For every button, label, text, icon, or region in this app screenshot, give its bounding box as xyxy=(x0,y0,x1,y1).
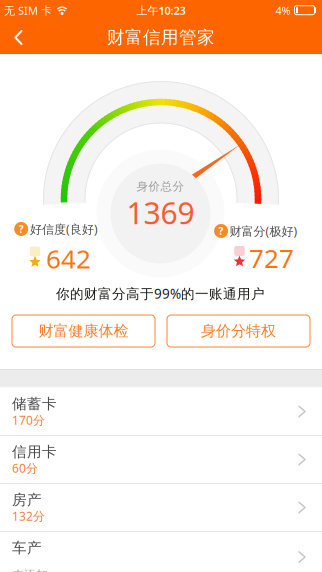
staticText: 财富信用管家 xyxy=(107,26,215,48)
staticText: 身价总分 xyxy=(136,179,184,194)
staticText: 车产 xyxy=(12,539,42,557)
staticText: 你的财富分高于99%的一账通用户 xyxy=(56,284,265,303)
staticText: 上午10:23 xyxy=(136,3,185,18)
button[interactable]: 储蓄卡 xyxy=(0,387,322,435)
staticText: 身价分特权 xyxy=(201,322,276,340)
button[interactable]: 财富健康体检 xyxy=(12,315,155,347)
staticText: 727 xyxy=(249,240,294,276)
button[interactable]: 车产 xyxy=(0,531,322,572)
staticText: 1369 xyxy=(126,192,194,233)
button[interactable]: 信用卡 xyxy=(0,435,322,483)
staticText: 财富健康体检 xyxy=(38,322,128,340)
staticText: 4% xyxy=(275,3,290,18)
staticText: 60分 xyxy=(12,460,38,476)
staticText: 信用卡 xyxy=(12,443,57,461)
staticText: 房产 xyxy=(12,491,42,509)
staticText: ? xyxy=(219,224,224,238)
staticText: 132分 xyxy=(12,508,45,524)
staticText: 无 SIM 卡 xyxy=(4,3,52,18)
button[interactable] xyxy=(8,27,29,48)
button[interactable]: ? xyxy=(214,224,228,238)
staticText: 好信度(良好) xyxy=(30,221,98,237)
staticText: 未添加 xyxy=(12,567,48,572)
staticText: 储蓄卡 xyxy=(12,395,57,413)
button[interactable]: 身价分特权 xyxy=(167,315,310,347)
button[interactable]: 房产 xyxy=(0,483,322,531)
staticText: 170分 xyxy=(12,412,45,428)
staticText: 财富分(极好) xyxy=(229,223,297,239)
staticText: ? xyxy=(19,222,24,236)
staticText: 642 xyxy=(46,241,91,276)
button[interactable]: ? xyxy=(14,222,28,236)
